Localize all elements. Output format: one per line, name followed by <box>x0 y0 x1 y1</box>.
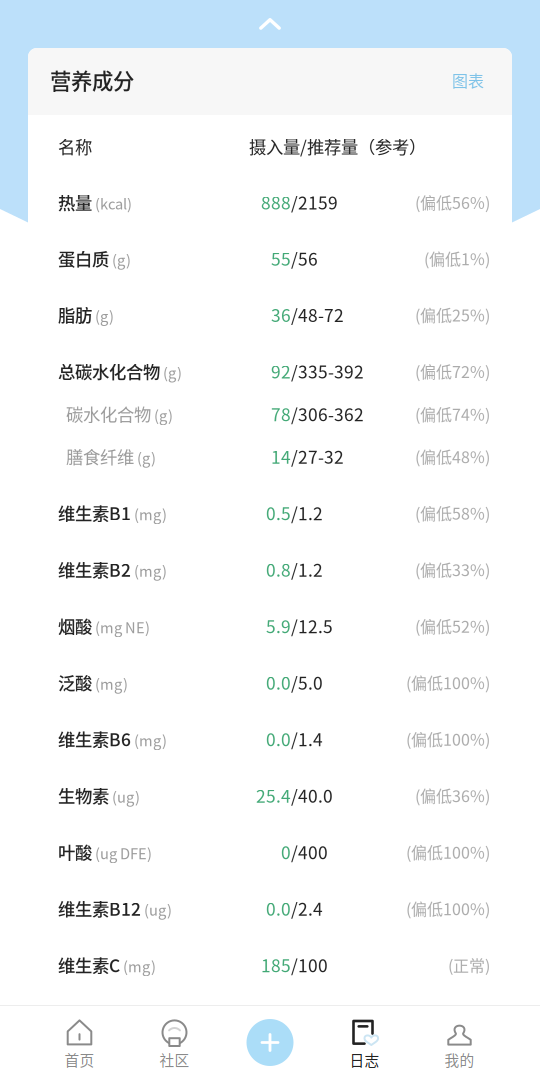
staticText: 首页 <box>64 1049 94 1070</box>
staticText: (偏低100%) <box>406 671 490 694</box>
staticText: 碳水化合物 <box>66 401 151 426</box>
staticText: 0 <box>281 839 291 864</box>
staticText: 36 <box>271 302 291 327</box>
button[interactable]: 我的 <box>412 1005 507 1080</box>
staticText: (偏低36%) <box>415 784 490 807</box>
staticText: (ug) <box>112 786 140 807</box>
staticText: (mg) <box>134 729 167 750</box>
staticText: 维生素B6 <box>58 726 131 751</box>
staticText: (偏低1%) <box>424 247 490 270</box>
staticText: (g) <box>163 361 182 383</box>
staticText: 脂肪 <box>58 302 92 327</box>
staticText: 5.9 <box>266 613 291 638</box>
button[interactable]: 营养成分 <box>28 48 512 115</box>
staticText: (mg) <box>134 560 167 581</box>
staticText: (g) <box>95 305 114 326</box>
staticText: (偏低58%) <box>415 501 490 524</box>
staticText: /1.4 <box>291 726 323 751</box>
staticText: 0.0 <box>266 896 291 921</box>
staticText: 维生素B12 <box>58 896 141 921</box>
button[interactable]: 首页 <box>32 1005 127 1080</box>
staticText: (偏低100%) <box>406 840 490 863</box>
staticText: /306-362 <box>291 401 364 426</box>
staticText: (mg) <box>134 503 167 524</box>
staticText: (偏低100%) <box>406 727 490 750</box>
staticText: /2159 <box>291 189 338 215</box>
staticText: (kcal) <box>95 192 132 214</box>
staticText: 营养成分 <box>50 65 134 95</box>
staticText: /48-72 <box>291 302 344 327</box>
staticText: /1.2 <box>291 500 323 525</box>
staticText: /27-32 <box>291 444 344 469</box>
button[interactable]: 日志 <box>317 1005 412 1080</box>
staticText: 摄入量/推荐量（参考） <box>249 133 426 159</box>
staticText: 总碳水化合物 <box>58 358 160 384</box>
staticText: /56 <box>291 246 318 271</box>
staticText: 维生素C <box>58 952 120 977</box>
staticText: 图表 <box>452 68 484 92</box>
staticText: /2.4 <box>291 896 323 921</box>
staticText: 0.0 <box>266 726 291 751</box>
staticText: 泛酸 <box>58 670 92 695</box>
staticText: (mg NE) <box>95 616 150 637</box>
staticText: 膳食纤维 <box>66 444 134 469</box>
staticText: (偏低100%) <box>406 897 490 920</box>
staticText: /12.5 <box>291 613 333 638</box>
staticText: (偏低52%) <box>415 614 490 637</box>
staticText: 185 <box>261 952 291 977</box>
staticText: 0.0 <box>266 670 291 695</box>
staticText: /40.0 <box>291 783 333 808</box>
staticText: 0.8 <box>266 557 291 582</box>
button[interactable]: 社区 <box>127 1005 222 1080</box>
staticText: (偏低74%) <box>415 402 490 425</box>
staticText: (mg) <box>123 955 156 976</box>
staticText: 维生素B1 <box>58 500 131 525</box>
staticText: (偏低72%) <box>415 359 490 383</box>
staticText: (g) <box>154 404 173 425</box>
staticText: 92 <box>271 358 291 384</box>
staticText: 生物素 <box>58 783 109 808</box>
staticText: /1.2 <box>291 557 323 582</box>
staticText: /400 <box>291 839 328 864</box>
staticText: 社区 <box>159 1049 189 1070</box>
staticText: 名称 <box>58 133 92 159</box>
staticText: 维生素B2 <box>58 557 131 582</box>
staticText: (mg) <box>95 673 128 694</box>
button[interactable]: Add <box>222 1019 317 1066</box>
staticText: /100 <box>291 952 328 977</box>
staticText: 热量 <box>58 189 92 215</box>
staticText: 14 <box>271 444 291 469</box>
staticText: /5.0 <box>291 670 323 695</box>
staticText: 烟酸 <box>58 613 92 638</box>
staticText: 我的 <box>444 1049 474 1070</box>
staticText: (偏低25%) <box>415 303 490 326</box>
staticText: (g) <box>112 249 131 270</box>
staticText: 0.5 <box>266 500 291 525</box>
staticText: 78 <box>271 401 291 426</box>
staticText: (正常) <box>448 953 490 976</box>
staticText: (g) <box>137 447 156 468</box>
staticText: 25.4 <box>256 783 291 808</box>
staticText: 888 <box>261 189 291 215</box>
staticText: (偏低33%) <box>415 558 490 581</box>
staticText: (ug DFE) <box>95 842 152 863</box>
staticText: (偏低56%) <box>415 190 490 214</box>
staticText: 55 <box>271 246 291 271</box>
staticText: 叶酸 <box>58 839 92 864</box>
staticText: 蛋白质 <box>58 246 109 271</box>
staticText: (ug) <box>144 899 172 920</box>
staticText: 日志 <box>349 1049 379 1070</box>
staticText: /335-392 <box>291 358 364 384</box>
staticText: (偏低48%) <box>415 445 490 468</box>
